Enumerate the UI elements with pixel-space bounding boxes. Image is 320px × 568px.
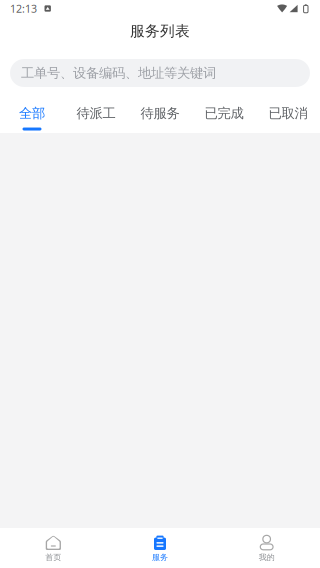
staticText: 已完成 (204, 105, 243, 121)
button[interactable]: 服务 (107, 528, 213, 568)
staticText: 全部 (19, 105, 45, 121)
staticText: 待服务 (140, 105, 179, 121)
staticText: 服务 (152, 552, 168, 562)
button[interactable]: 我的 (213, 528, 320, 568)
button[interactable]: 全部 (0, 97, 64, 133)
button[interactable]: 待派工 (64, 97, 128, 133)
staticText: 我的 (259, 552, 275, 562)
button[interactable]: 已完成 (192, 97, 256, 133)
staticText: 工单号、设备编码、地址等关键词 (21, 65, 216, 81)
staticText: 待派工 (76, 105, 115, 121)
button[interactable]: 待服务 (128, 97, 192, 133)
button[interactable]: 工单号、设备编码、地址等关键词 (10, 59, 310, 87)
button[interactable]: 已取消 (256, 97, 320, 133)
button[interactable]: 首页 (0, 528, 107, 568)
staticText: 首页 (45, 552, 61, 562)
staticText: 已取消 (268, 105, 307, 121)
staticText: 12:13 (10, 1, 37, 16)
staticText: 服务列表 (130, 22, 190, 40)
